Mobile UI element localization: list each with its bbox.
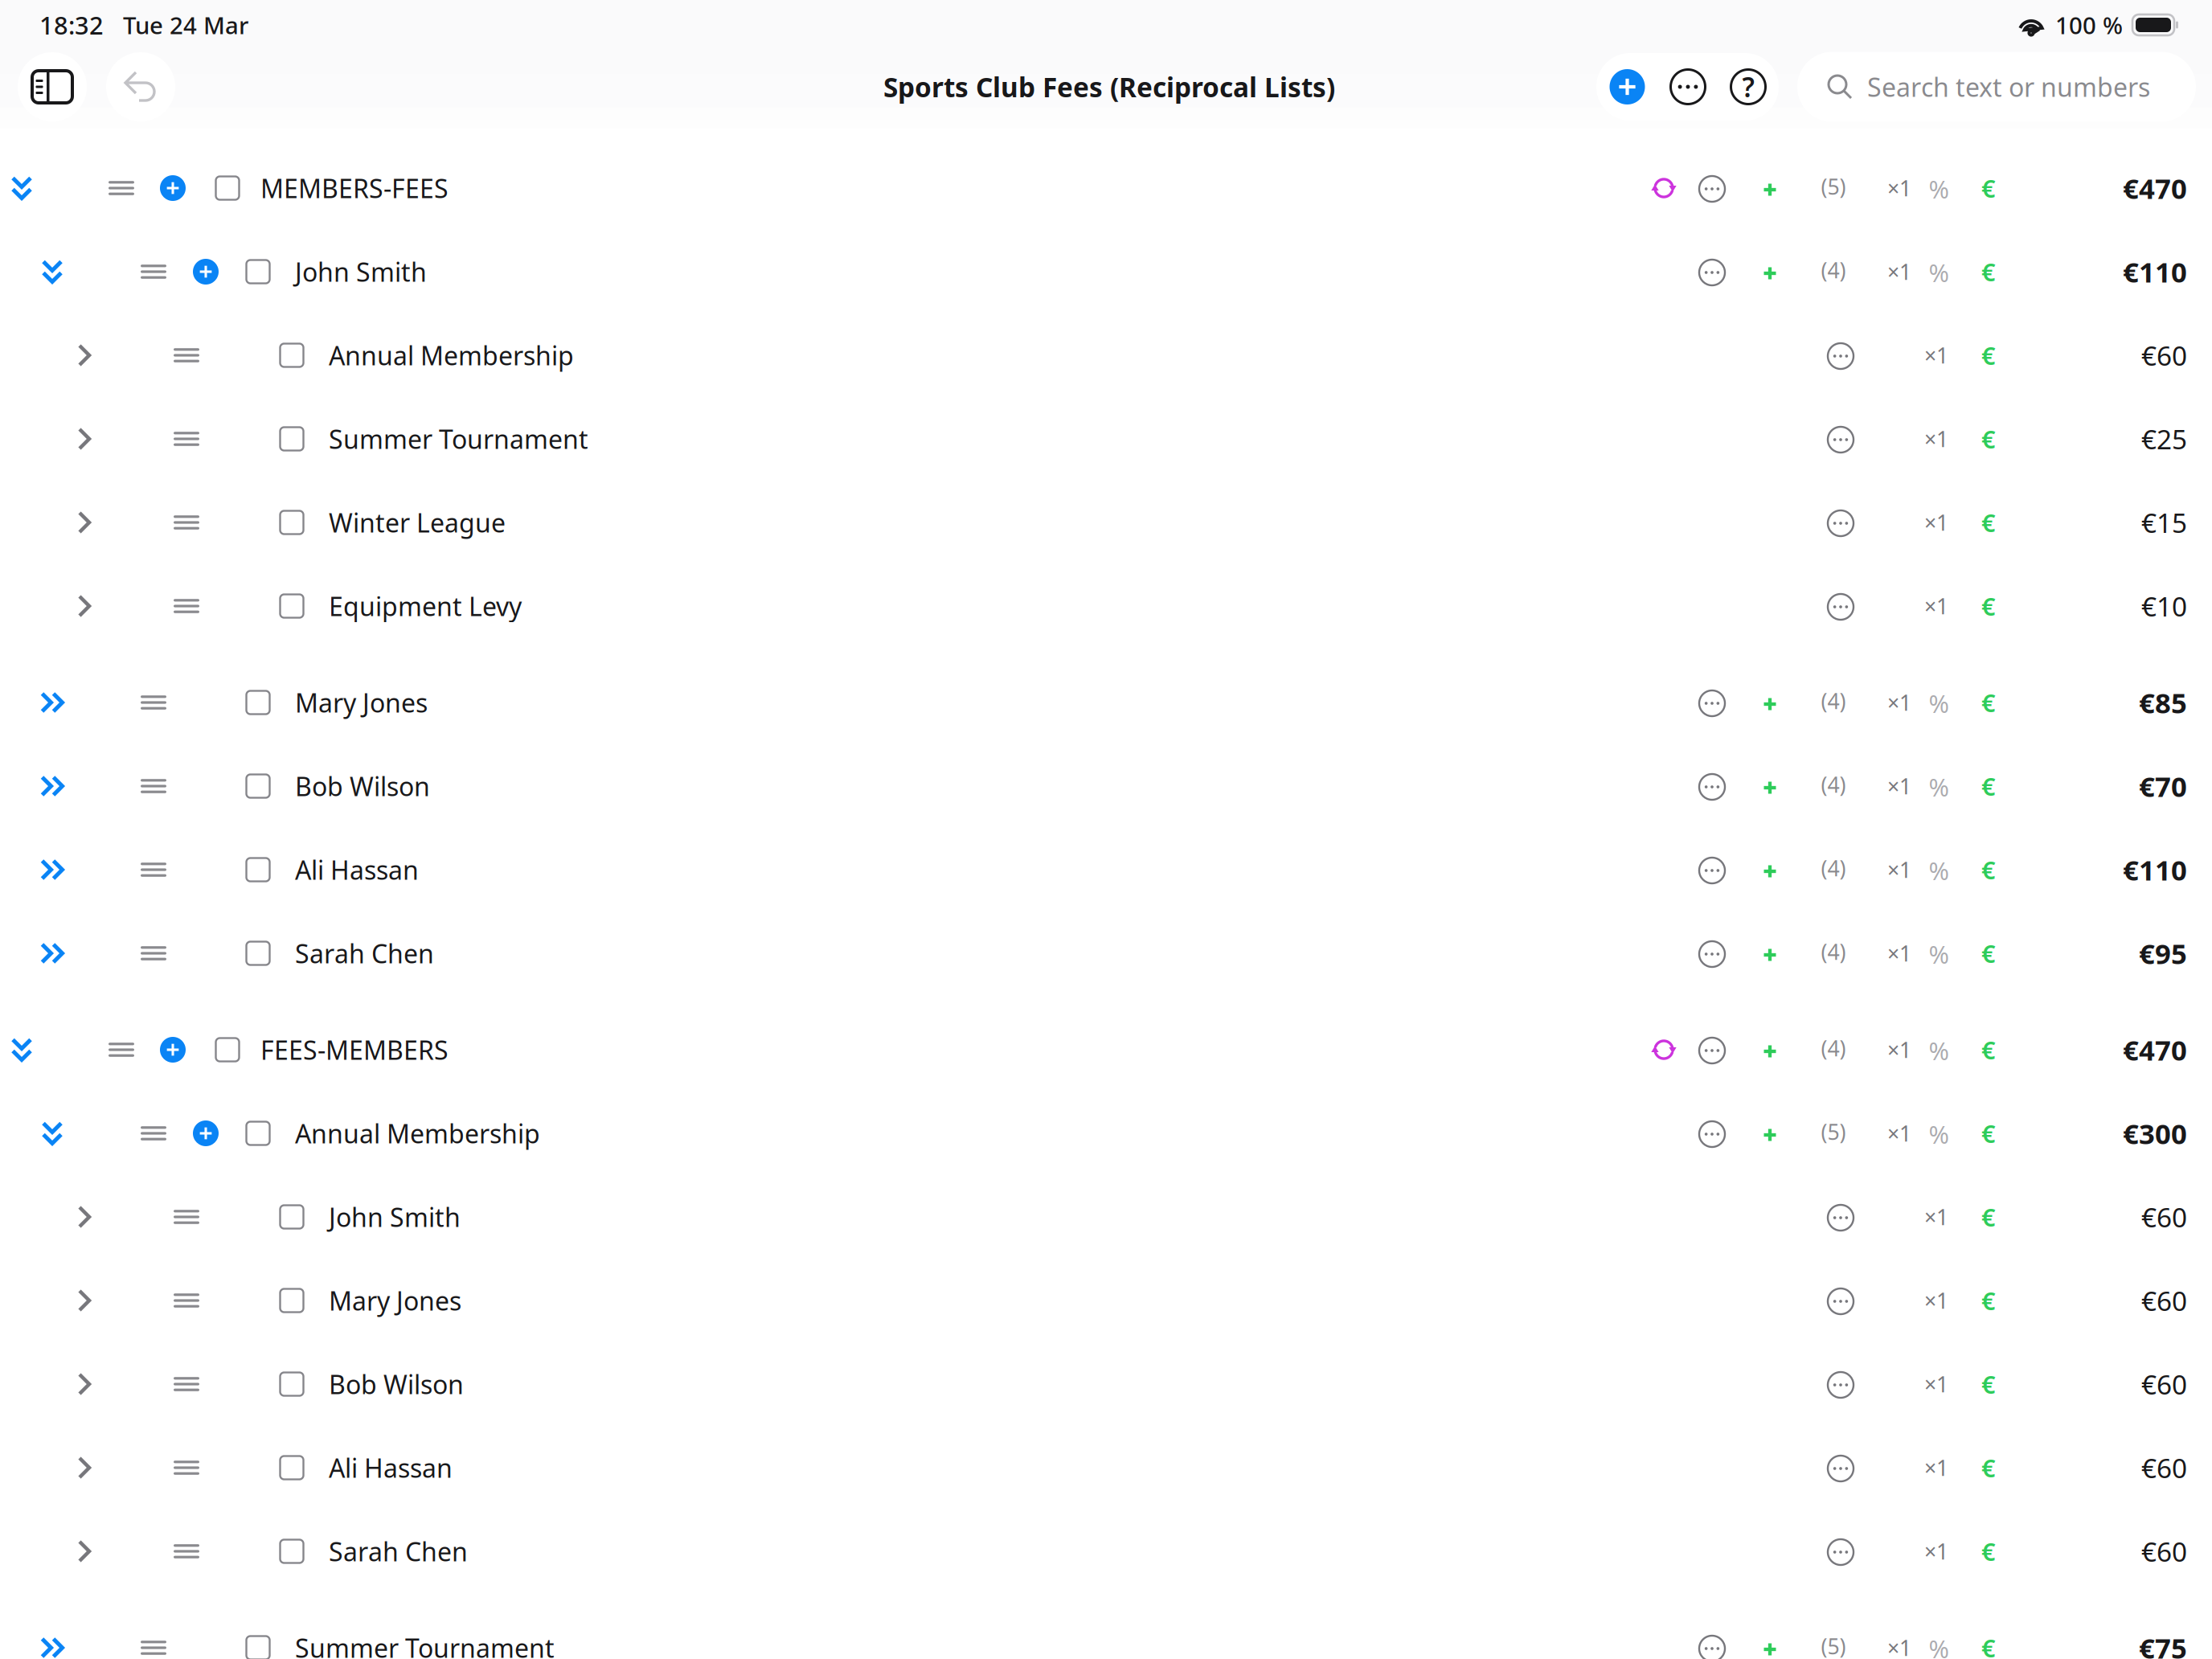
button[interactable]: Ali Hassan	[295, 851, 1340, 888]
button[interactable]: Select row	[280, 1205, 303, 1229]
button[interactable]: Add child item	[160, 1037, 186, 1063]
button[interactable]: Select row	[246, 774, 270, 798]
button[interactable]: John Smith	[295, 253, 1340, 290]
button[interactable]: Select row	[280, 594, 303, 618]
button[interactable]: Reorder	[141, 264, 166, 279]
button[interactable]: Toggle disclosure	[71, 1454, 98, 1481]
button[interactable]: Toggle disclosure	[71, 425, 98, 453]
button[interactable]: Toggle Sidebar	[18, 52, 87, 121]
button[interactable]: Reorder	[174, 1210, 199, 1224]
button[interactable]: Select row	[246, 942, 270, 965]
button[interactable]: Reorder	[141, 695, 166, 710]
button[interactable]: Select row	[216, 1038, 239, 1061]
button[interactable]: Reorder	[174, 1293, 199, 1308]
button[interactable]: Row options	[1828, 510, 1854, 536]
button[interactable]: Toggle disclosure	[71, 1203, 98, 1231]
button[interactable]: Add child item	[193, 259, 219, 285]
button[interactable]: Row options	[1699, 1636, 1725, 1659]
button[interactable]: Row options	[1699, 774, 1725, 800]
button[interactable]: Annual Membership	[295, 1115, 1340, 1152]
button[interactable]: Sarah Chen	[329, 1533, 1374, 1570]
button[interactable]: Bob Wilson	[329, 1366, 1374, 1403]
button[interactable]: Row options	[1699, 176, 1725, 202]
button[interactable]: Reorder	[174, 348, 199, 363]
button[interactable]: Toggle disclosure	[39, 1120, 66, 1147]
button[interactable]: Add item	[1761, 946, 1779, 964]
button[interactable]: Reorder	[174, 432, 199, 446]
button[interactable]: Reorder	[141, 946, 166, 961]
button[interactable]: Add item	[1761, 1043, 1779, 1060]
button[interactable]: Toggle disclosure	[39, 689, 66, 716]
button[interactable]: Reorder	[141, 1641, 166, 1655]
button[interactable]: Reorder	[141, 862, 166, 877]
button[interactable]: Select row	[246, 691, 270, 714]
button[interactable]: Add item	[1761, 862, 1779, 880]
button[interactable]: Row options	[1699, 1121, 1725, 1147]
button[interactable]: Select row	[280, 511, 303, 534]
button[interactable]: Row options	[1699, 260, 1725, 285]
button[interactable]: Select row	[246, 858, 270, 881]
button[interactable]: Mary Jones	[329, 1282, 1374, 1319]
button[interactable]: Equipment Levy	[329, 588, 1374, 625]
button[interactable]: Row options	[1828, 427, 1854, 453]
button[interactable]: Add item	[1761, 779, 1779, 797]
button[interactable]: Toggle disclosure	[8, 1036, 35, 1063]
button[interactable]: Reorder	[174, 515, 199, 530]
button[interactable]: Reorder	[174, 1460, 199, 1475]
button[interactable]: Add	[1610, 69, 1645, 104]
button[interactable]: Reorder	[174, 1544, 199, 1559]
button[interactable]: Row options	[1828, 594, 1854, 620]
button[interactable]: Toggle disclosure	[39, 856, 66, 883]
button[interactable]: Add child item	[193, 1120, 219, 1146]
button[interactable]: Mary Jones	[295, 684, 1340, 721]
button[interactable]: FEES-MEMBERS	[260, 1031, 1305, 1068]
button[interactable]: Select row	[280, 1540, 303, 1563]
button[interactable]: Row options	[1828, 343, 1854, 369]
button[interactable]: Reorder	[141, 779, 166, 793]
button[interactable]: Summer Tournament	[329, 420, 1374, 457]
button[interactable]: Toggle disclosure	[71, 1287, 98, 1314]
button[interactable]: Toggle disclosure	[39, 258, 66, 285]
button[interactable]: Select row	[280, 1456, 303, 1479]
button[interactable]: Row options	[1828, 1372, 1854, 1398]
button[interactable]: Reciprocal link	[1651, 1037, 1677, 1063]
button[interactable]: Add item	[1761, 264, 1779, 282]
button[interactable]: Sarah Chen	[295, 935, 1340, 972]
button[interactable]: Select row	[280, 344, 303, 367]
button[interactable]: Bob Wilson	[295, 768, 1340, 805]
button[interactable]: Reorder	[174, 1377, 199, 1391]
button[interactable]: Row options	[1699, 858, 1725, 883]
button[interactable]: More options	[1671, 70, 1705, 104]
button[interactable]: Row options	[1828, 1539, 1854, 1565]
button[interactable]: Undo	[106, 52, 175, 121]
button[interactable]: Toggle disclosure	[39, 940, 66, 967]
button[interactable]: Help	[1731, 70, 1766, 104]
button[interactable]: Add item	[1761, 1126, 1779, 1144]
button[interactable]: Reorder	[109, 181, 134, 195]
button[interactable]: Reorder	[141, 1126, 166, 1141]
button[interactable]: Add item	[1761, 695, 1779, 713]
button[interactable]: Reorder	[109, 1043, 134, 1057]
button[interactable]: Toggle disclosure	[8, 174, 35, 202]
button[interactable]: Add item	[1761, 1641, 1779, 1658]
button[interactable]: Row options	[1699, 690, 1725, 716]
button[interactable]: Toggle disclosure	[71, 1370, 98, 1398]
button[interactable]: Toggle disclosure	[39, 772, 66, 800]
button[interactable]: Toggle disclosure	[71, 1538, 98, 1565]
button[interactable]: John Smith	[329, 1198, 1374, 1235]
button[interactable]: Toggle disclosure	[71, 592, 98, 620]
button[interactable]: Row options	[1828, 1288, 1854, 1314]
button[interactable]: Row options	[1699, 1038, 1725, 1063]
button[interactable]: Reorder	[174, 599, 199, 613]
button[interactable]: Toggle disclosure	[71, 342, 98, 369]
button[interactable]: Summer Tournament	[295, 1629, 1340, 1659]
button[interactable]: Toggle disclosure	[39, 1634, 66, 1659]
button[interactable]: Select row	[280, 1372, 303, 1396]
button[interactable]: Row options	[1828, 1205, 1854, 1231]
button[interactable]: Add child item	[160, 175, 186, 201]
button[interactable]: Row options	[1828, 1456, 1854, 1481]
button[interactable]: MEMBERS-FEES	[260, 170, 1305, 207]
button[interactable]: Select row	[280, 1289, 303, 1312]
button[interactable]: Reciprocal link	[1651, 175, 1677, 201]
button[interactable]: Select row	[246, 260, 270, 283]
